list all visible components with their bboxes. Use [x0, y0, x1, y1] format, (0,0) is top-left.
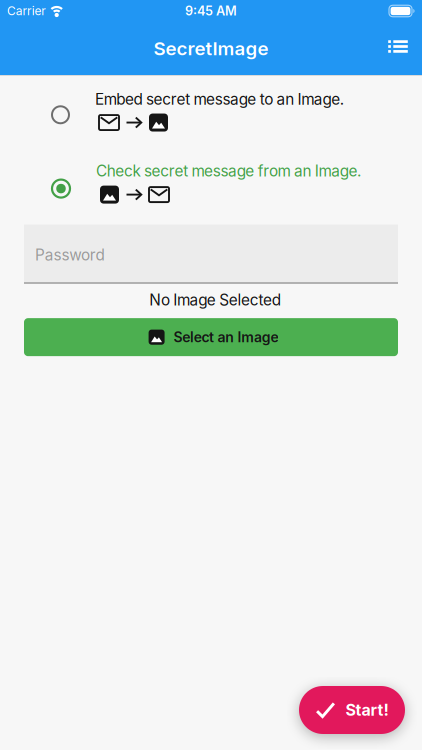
staticText: Carrier — [7, 4, 46, 18]
staticText: SecretImage — [153, 37, 268, 60]
staticText: Select an Image — [174, 329, 278, 346]
button[interactable]: Menu — [382, 34, 414, 59]
staticText: Start! — [345, 700, 388, 720]
staticText: Embed secret message to an Image. — [95, 90, 344, 109]
button[interactable]: Select an Image — [0, 318, 422, 356]
button[interactable]: Embed secret message to an Image. — [0, 90, 422, 132]
button[interactable]: Check secret message from an Image. — [0, 162, 422, 204]
staticText: 9:45 AM — [185, 3, 237, 19]
staticText: Password — [35, 246, 105, 264]
button[interactable]: Start! — [299, 686, 405, 734]
staticText: No Image Selected — [149, 291, 281, 309]
staticText: Check secret message from an Image. — [96, 162, 361, 180]
